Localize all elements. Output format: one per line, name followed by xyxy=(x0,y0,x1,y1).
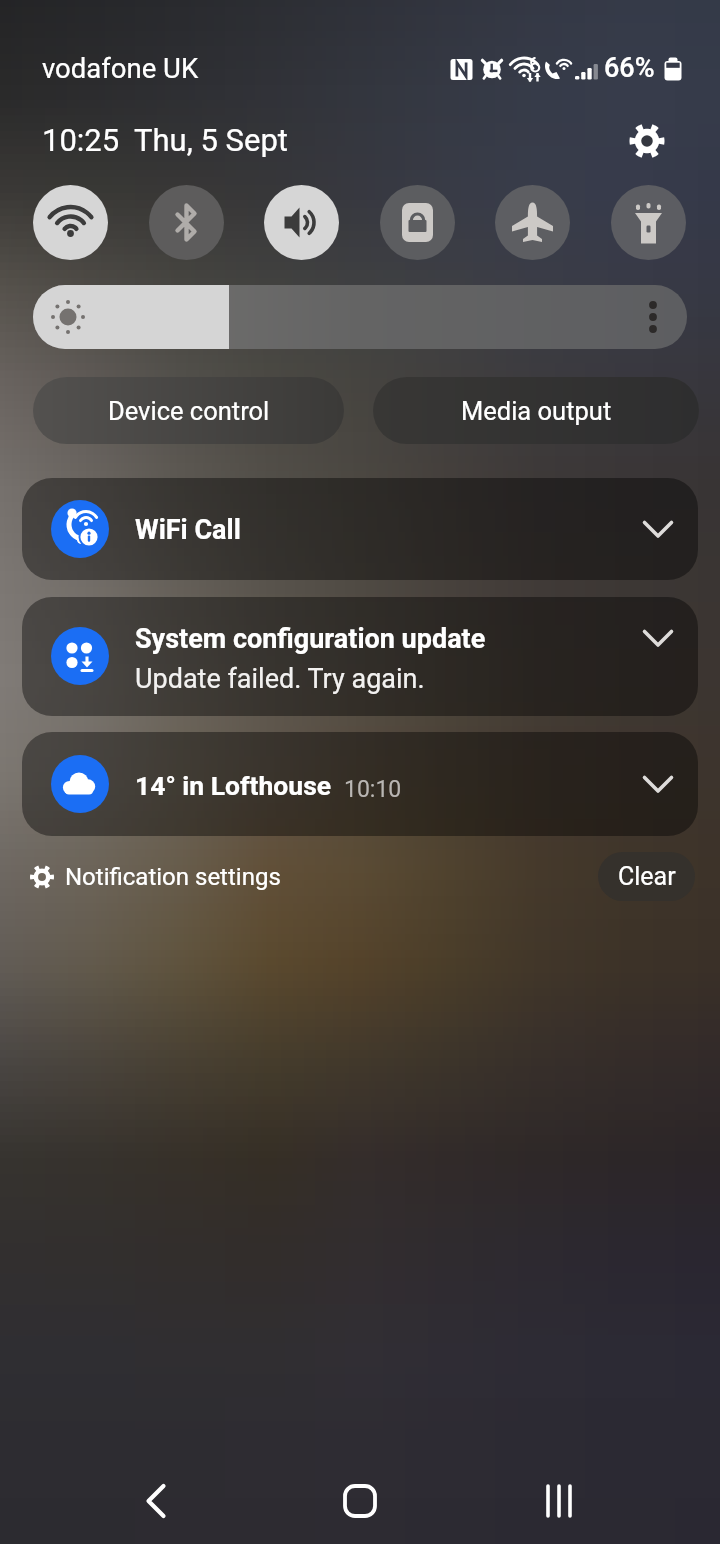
staticText: WiFi Call xyxy=(135,514,241,546)
button[interactable]: Recent apps xyxy=(528,1470,590,1532)
staticText: 14° in Lofthouse xyxy=(135,770,332,801)
button[interactable]: Notification settings xyxy=(28,857,281,897)
button[interactable]: Wi-Fi xyxy=(33,185,108,260)
button[interactable]: Back xyxy=(125,1470,187,1532)
staticText: Device control xyxy=(108,396,270,426)
button[interactable]: Clear xyxy=(598,852,695,901)
staticText: vodafone UK xyxy=(42,52,199,84)
button[interactable]: Sound xyxy=(264,185,339,260)
staticText: System configuration update xyxy=(135,623,486,655)
button[interactable]: Auto rotate xyxy=(380,185,455,260)
button[interactable]: WiFi Call xyxy=(22,478,698,580)
button[interactable]: Flashlight xyxy=(611,185,686,260)
staticText: Thu, 5 Sept xyxy=(134,122,288,158)
button[interactable]: Device control xyxy=(33,377,344,444)
button[interactable]: Brightness xyxy=(33,285,687,349)
staticText: Notification settings xyxy=(65,863,281,891)
button[interactable]: System configuration update xyxy=(22,597,698,716)
staticText: Media output xyxy=(461,396,612,426)
button[interactable]: Media output xyxy=(373,377,699,444)
staticText: 66% xyxy=(604,52,655,84)
button[interactable]: Airplane mode xyxy=(495,185,570,260)
button[interactable]: 14° in Lofthouse xyxy=(22,732,698,836)
button[interactable]: Settings xyxy=(625,120,669,164)
staticText: 10:25 xyxy=(42,122,120,158)
staticText: Update failed. Try again. xyxy=(135,663,425,695)
staticText: Clear xyxy=(618,862,676,891)
button[interactable]: Bluetooth xyxy=(149,185,224,260)
staticText: 10:10 xyxy=(344,776,402,803)
button[interactable]: Home xyxy=(329,1470,391,1532)
